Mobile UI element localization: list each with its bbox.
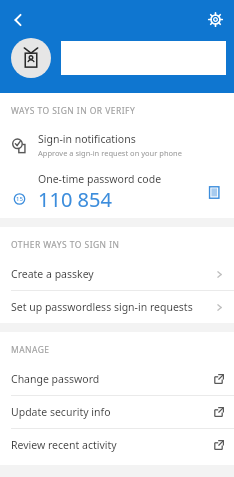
button[interactable]: Review recent activity [0, 429, 234, 461]
staticText: MANAGE [11, 344, 50, 356]
button[interactable]: Update security info [0, 396, 234, 428]
button[interactable]: Create a passkey [0, 258, 234, 290]
staticText: Create a passkey [11, 267, 215, 281]
button[interactable]: Back [4, 6, 32, 34]
button[interactable]: 15 [0, 166, 234, 218]
staticText: One-time password code [38, 172, 162, 186]
staticText: Change password [11, 372, 214, 386]
staticText: 110 854 [38, 186, 112, 213]
button[interactable]: Copy code [202, 180, 226, 204]
staticText: Review recent activity [11, 438, 214, 452]
button[interactable]: Change password [0, 363, 234, 395]
button[interactable]: Sign-in notifications [0, 124, 234, 166]
button[interactable]: Settings [202, 6, 228, 32]
staticText: Sign-in notifications [38, 132, 136, 146]
staticText: OTHER WAYS TO SIGN IN [11, 239, 120, 251]
staticText: 15 [16, 195, 23, 203]
button[interactable]: Profile [11, 38, 51, 78]
staticText: WAYS TO SIGN IN OR VERIFY [11, 105, 136, 117]
staticText: Update security info [11, 405, 214, 419]
staticText: Approve a sign-in request on your phone [38, 148, 182, 158]
staticText: Set up passwordless sign-in requests [11, 300, 215, 314]
button[interactable]: Set up passwordless sign-in requests [0, 291, 234, 323]
